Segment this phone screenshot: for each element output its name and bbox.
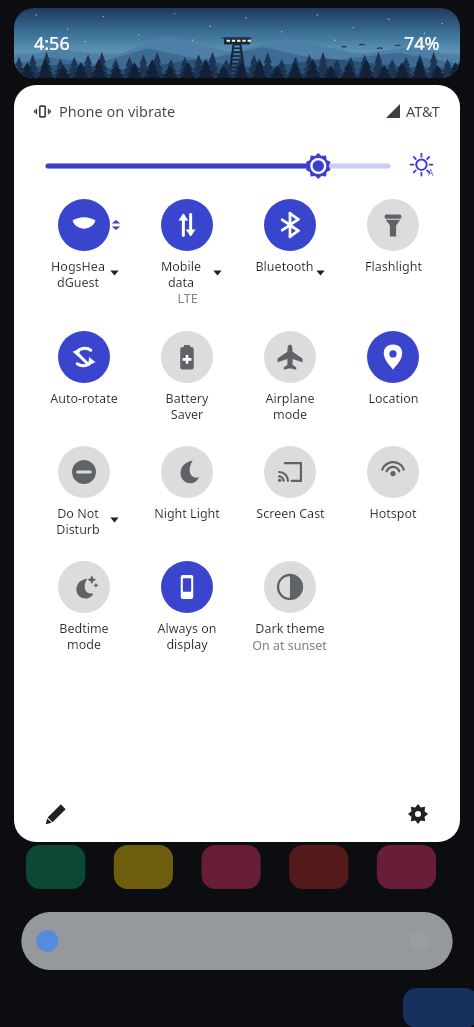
staticText: Always on display xyxy=(151,620,223,652)
button[interactable]: HogsHeadGuest xyxy=(32,199,135,290)
staticText: Do Not Disturb xyxy=(48,505,108,537)
button[interactable]: Hotspot xyxy=(341,446,444,522)
button[interactable]: Auto brightness xyxy=(406,149,440,183)
staticText: Bluetooth xyxy=(255,258,314,275)
staticText: Bedtime mode xyxy=(48,620,120,652)
staticText: AT&T xyxy=(406,101,440,121)
staticText: Hotspot xyxy=(369,505,417,522)
button[interactable]: Bluetooth xyxy=(238,199,341,275)
staticText: Phone on vibrate xyxy=(59,101,176,121)
staticText: On at sunset xyxy=(252,637,327,654)
staticText: LTE xyxy=(177,290,198,307)
staticText: Dark theme xyxy=(255,620,325,637)
staticText: Flashlight xyxy=(365,258,422,275)
button[interactable]: Bedtime mode xyxy=(32,561,135,652)
button[interactable]: Do Not Disturb xyxy=(32,446,135,537)
staticText: Location xyxy=(368,390,419,407)
button[interactable]: Night Light xyxy=(135,446,238,522)
staticText: A xyxy=(428,167,434,179)
staticText: 4:56 xyxy=(34,31,70,56)
staticText: Battery Saver xyxy=(151,390,223,422)
staticText: HogsHeadGuest xyxy=(48,258,108,290)
button[interactable]: Auto-rotate xyxy=(32,331,135,407)
button[interactable]: Mobile data xyxy=(135,199,238,307)
staticText: Airplane mode xyxy=(254,390,326,422)
button[interactable]: Edit tiles xyxy=(36,794,76,834)
button[interactable]: Brightness xyxy=(48,149,388,183)
button[interactable]: Always on display xyxy=(135,561,238,652)
button[interactable]: Location xyxy=(341,331,444,407)
button[interactable]: Settings xyxy=(398,794,438,834)
staticText: 74% xyxy=(404,31,440,56)
button[interactable]: Phone on vibrate xyxy=(34,101,176,121)
button[interactable]: Dark theme xyxy=(238,561,341,654)
staticText: Mobile data xyxy=(151,258,211,290)
staticText: Night Light xyxy=(154,505,220,522)
button[interactable]: Screen Cast xyxy=(238,446,341,522)
button[interactable]: Flashlight xyxy=(341,199,444,275)
staticText: Screen Cast xyxy=(256,505,325,522)
staticText: Auto-rotate xyxy=(50,390,118,407)
button[interactable]: Battery Saver xyxy=(135,331,238,422)
button[interactable]: Airplane mode xyxy=(238,331,341,422)
